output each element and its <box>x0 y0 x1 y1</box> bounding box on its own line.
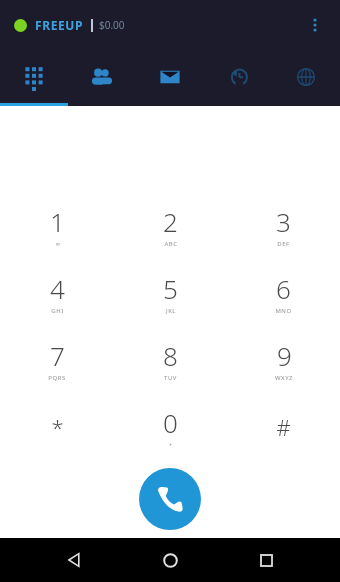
staticText: 5 <box>163 271 178 306</box>
staticText: ABC <box>164 240 178 248</box>
button[interactable]: Dialpad <box>0 50 68 103</box>
staticText: + <box>169 441 173 449</box>
staticText: JKL <box>166 307 176 315</box>
button[interactable]: Back <box>52 538 96 582</box>
staticText: 9 <box>277 338 292 373</box>
button[interactable]: 0 <box>114 393 227 460</box>
staticText: $0.00 <box>99 18 125 32</box>
staticText: DEF <box>277 240 290 248</box>
button[interactable]: 9 <box>227 326 340 393</box>
staticText: 3 <box>276 204 291 239</box>
button[interactable]: 5 <box>114 259 227 326</box>
button[interactable]: More options <box>300 10 330 40</box>
button[interactable]: 2 <box>114 192 227 259</box>
button[interactable]: 1 <box>0 192 114 259</box>
button[interactable]: Recents <box>244 538 288 582</box>
staticText: WXYZ <box>275 374 293 382</box>
staticText: 7 <box>50 338 65 373</box>
staticText: GHI <box>51 307 64 315</box>
staticText: # <box>276 412 291 442</box>
button[interactable]: # <box>227 393 340 460</box>
button[interactable]: Messages <box>136 50 204 103</box>
staticText: FREEUP <box>35 17 84 33</box>
button[interactable]: 7 <box>0 326 114 393</box>
staticText: 1 <box>50 204 65 239</box>
staticText: MNO <box>275 307 292 315</box>
staticText: 0 <box>163 405 178 440</box>
button[interactable]: Browser <box>272 50 340 103</box>
button[interactable]: 3 <box>227 192 340 259</box>
staticText: 2 <box>163 204 178 239</box>
button[interactable]: 4 <box>0 259 114 326</box>
staticText: PQRS <box>48 374 66 382</box>
staticText: * <box>51 412 64 442</box>
button[interactable]: History <box>204 50 272 103</box>
button[interactable]: Call <box>139 468 201 530</box>
button[interactable]: 8 <box>114 326 227 393</box>
button[interactable]: Home <box>148 538 192 582</box>
staticText: TUV <box>164 374 177 382</box>
staticText: 6 <box>276 271 291 306</box>
button[interactable]: * <box>0 393 114 460</box>
staticText: 4 <box>50 271 65 306</box>
staticText: 8 <box>163 338 178 373</box>
staticText: ∞ <box>55 240 61 247</box>
button[interactable]: 6 <box>227 259 340 326</box>
button[interactable]: Contacts <box>68 50 136 103</box>
